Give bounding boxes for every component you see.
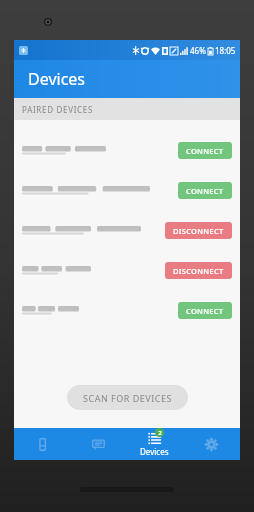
button[interactable]: CONNECT bbox=[178, 182, 232, 199]
button[interactable]: CONNECT bbox=[14, 170, 240, 210]
staticText: 18:05 bbox=[215, 45, 236, 56]
staticText: 2 bbox=[158, 429, 162, 437]
button[interactable]: CONNECT bbox=[178, 142, 232, 159]
button[interactable]: CONNECT bbox=[178, 302, 232, 319]
button[interactable]: Settings bbox=[183, 428, 240, 460]
button[interactable]: CONNECT bbox=[14, 130, 240, 170]
staticText: Devices bbox=[28, 68, 86, 90]
button[interactable]: DISCONNECT bbox=[14, 210, 240, 250]
staticText: PAIRED DEVICES bbox=[22, 104, 94, 115]
staticText: CONNECT bbox=[186, 306, 224, 316]
staticText: DISCONNECT bbox=[173, 266, 224, 276]
button[interactable]: Phone bbox=[14, 428, 70, 460]
staticText: DISCONNECT bbox=[173, 226, 224, 236]
button[interactable]: Messages bbox=[70, 428, 126, 460]
button[interactable]: Devices bbox=[126, 428, 183, 460]
staticText: CONNECT bbox=[186, 186, 224, 196]
staticText: SCAN FOR DEVICES bbox=[83, 392, 172, 404]
button[interactable]: SCAN FOR DEVICES bbox=[67, 385, 188, 410]
button[interactable]: DISCONNECT bbox=[165, 222, 232, 239]
staticText: CONNECT bbox=[186, 146, 224, 156]
button[interactable]: CONNECT bbox=[14, 290, 240, 330]
button[interactable]: DISCONNECT bbox=[14, 250, 240, 290]
staticText: Devices bbox=[140, 446, 169, 457]
button[interactable]: DISCONNECT bbox=[165, 262, 232, 279]
staticText: 46% bbox=[190, 45, 206, 56]
